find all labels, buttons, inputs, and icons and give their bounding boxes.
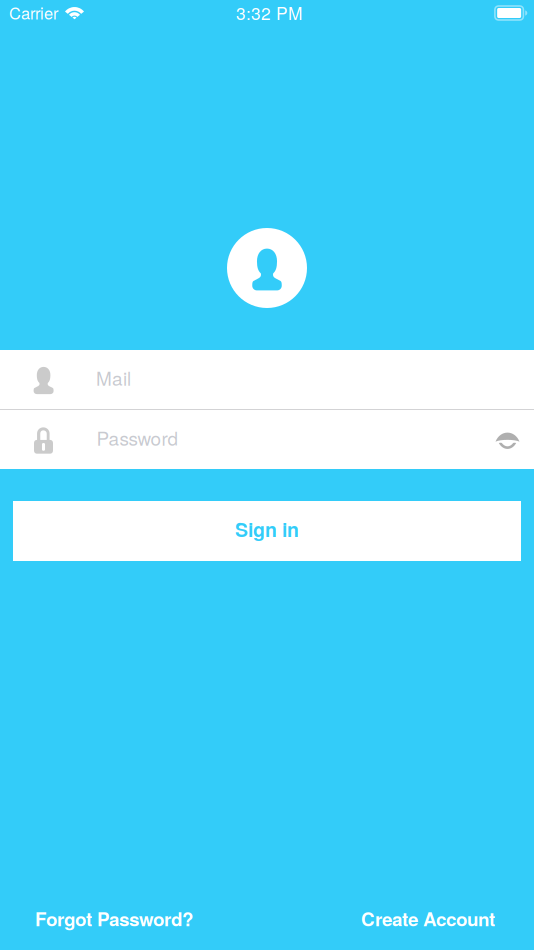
- staticText: Forgot Password?: [35, 905, 193, 932]
- button[interactable]: Show password: [481, 410, 534, 469]
- button[interactable]: Sign in: [13, 501, 521, 561]
- staticText: Create Account: [361, 905, 495, 932]
- staticText: Sign in: [235, 515, 299, 543]
- staticText: Carrier: [9, 1, 58, 24]
- staticText: 3:32 PM: [236, 0, 302, 25]
- staticText: Mail: [96, 364, 131, 391]
- button[interactable]: Forgot Password?: [35, 905, 193, 932]
- button[interactable]: Create Account: [361, 905, 495, 932]
- staticText: Password: [97, 424, 179, 451]
